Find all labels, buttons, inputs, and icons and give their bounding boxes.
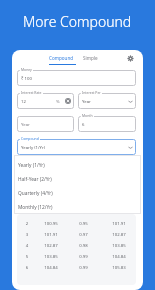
button[interactable]: 6 <box>78 116 136 132</box>
button[interactable]: Monthly (12/Yr) <box>14 200 141 214</box>
staticText: Half-Year (2/Yr) <box>18 176 52 183</box>
staticText: 3 <box>17 231 37 237</box>
staticText: Quarterly (4/Yr) <box>18 190 53 197</box>
staticText: Monthly (12/Yr) <box>18 204 53 211</box>
staticText: 0.95 <box>67 220 100 226</box>
staticText: Interest Rate <box>21 90 42 95</box>
button[interactable]: Settings <box>122 50 138 66</box>
staticText: 104.84 <box>101 253 136 259</box>
staticText: 105.83 <box>101 264 136 270</box>
staticText: 100.95 <box>37 220 65 226</box>
button[interactable]: Half-Year (2/Yr) <box>14 172 141 186</box>
button[interactable]: Year <box>17 116 74 132</box>
button[interactable]: Year <box>78 93 136 109</box>
staticText: 4 <box>17 242 37 248</box>
staticText: Compound <box>49 55 74 61</box>
staticText: 101.91 <box>101 220 136 226</box>
staticText: 104.84 <box>37 264 65 270</box>
staticText: 12 <box>21 98 26 104</box>
staticText: 103.85 <box>101 242 136 248</box>
button[interactable]: Yearly (1/Yr) <box>17 139 136 155</box>
staticText: 6 <box>17 264 37 270</box>
button[interactable]: Quarterly (4/Yr) <box>14 186 141 200</box>
staticText: 0.99 <box>67 264 100 270</box>
staticText: % <box>56 98 60 104</box>
button[interactable]: Compound <box>39 52 83 64</box>
staticText: Compound <box>21 136 39 141</box>
staticText: More Compound <box>23 12 132 31</box>
staticText: 102.87 <box>101 231 136 237</box>
staticText: 6 <box>82 121 85 127</box>
staticText: Money <box>21 67 32 72</box>
staticText: 102.87 <box>37 242 65 248</box>
button[interactable]: 12 <box>17 93 74 109</box>
button[interactable]: Simple <box>75 52 105 64</box>
staticText: 5 <box>17 253 37 259</box>
staticText: 0.97 <box>67 231 100 237</box>
staticText: 0.99 <box>67 253 100 259</box>
staticText: Yearly (1/Yr) <box>21 144 45 150</box>
staticText: Year <box>82 98 91 104</box>
staticText: Month <box>82 113 93 118</box>
staticText: Year <box>21 121 30 127</box>
staticText: Simple <box>83 55 98 61</box>
staticText: Interest Per <box>82 90 101 95</box>
button[interactable]: Yearly (1/Yr) <box>14 158 141 172</box>
button[interactable]: ₹ 100 <box>17 70 136 86</box>
staticText: 2 <box>17 220 37 226</box>
staticText: Yearly (1/Yr) <box>18 162 45 169</box>
staticText: 103.85 <box>37 253 65 259</box>
staticText: ₹ 100 <box>21 75 32 81</box>
staticText: 101.91 <box>37 231 65 237</box>
staticText: 0.98 <box>67 242 100 248</box>
